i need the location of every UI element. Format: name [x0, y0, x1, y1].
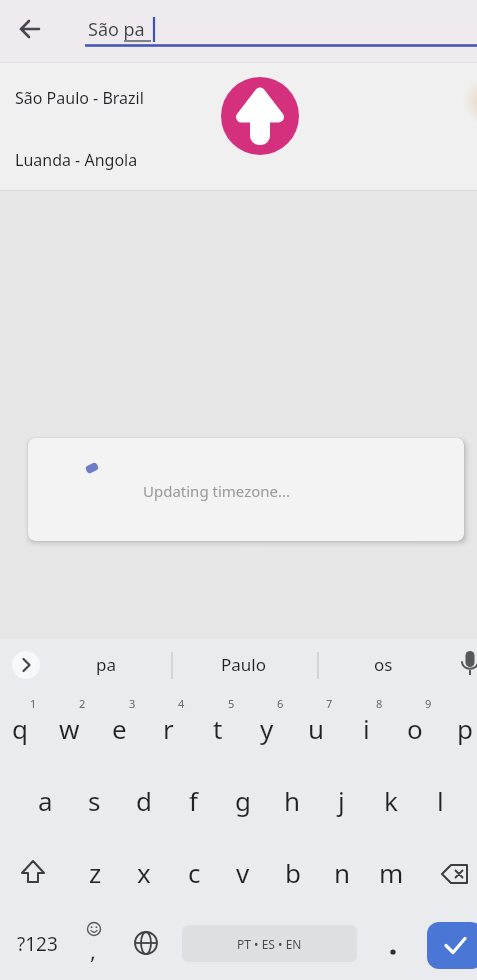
button[interactable]: Paulo — [188, 639, 298, 690]
staticText: 9 — [425, 696, 432, 711]
staticText: l — [437, 783, 444, 818]
button[interactable]: j — [317, 767, 365, 833]
staticText: x — [137, 855, 151, 890]
button[interactable]: u — [292, 695, 340, 761]
button[interactable] — [12, 651, 40, 679]
button[interactable]: k — [367, 767, 415, 833]
staticText: d — [136, 783, 152, 818]
button[interactable]: p — [441, 695, 477, 761]
button[interactable]: os — [328, 639, 438, 690]
staticText: q — [12, 711, 28, 746]
staticText: y — [260, 711, 274, 746]
staticText: pa — [96, 653, 116, 676]
button[interactable]: b — [269, 839, 317, 905]
staticText: w — [59, 711, 80, 746]
button[interactable]: a — [21, 767, 69, 833]
staticText: c — [188, 855, 201, 890]
button[interactable]: w — [45, 695, 93, 761]
staticText: i — [363, 711, 370, 746]
staticText: 2 — [79, 696, 86, 711]
staticText: p — [457, 711, 473, 746]
staticText: o — [407, 711, 423, 746]
staticText: 8 — [376, 696, 383, 711]
button[interactable]: São Paulo - Brazil — [0, 62, 477, 129]
staticText: h — [284, 783, 301, 818]
button[interactable]: i — [342, 695, 390, 761]
staticText: g — [235, 783, 251, 818]
button[interactable]: r — [144, 695, 192, 761]
staticText: t — [213, 711, 223, 746]
staticText: 3 — [129, 696, 136, 711]
staticText: Updating timezone... — [143, 481, 291, 501]
staticText: São pa — [88, 17, 145, 42]
button[interactable]: o — [391, 695, 439, 761]
staticText: f — [189, 783, 198, 818]
staticText: b — [285, 855, 301, 890]
button[interactable]: Luanda - Angola — [0, 129, 477, 191]
button[interactable] — [131, 928, 161, 958]
staticText: e — [112, 711, 127, 746]
button[interactable]: d — [120, 767, 168, 833]
staticText: 4 — [178, 696, 185, 711]
staticText: 5 — [228, 696, 235, 711]
staticText: ?123 — [17, 931, 58, 957]
button[interactable] — [16, 15, 44, 43]
staticText: u — [308, 711, 325, 746]
button[interactable]: ?123 — [10, 907, 64, 980]
staticText: z — [89, 855, 102, 890]
button[interactable]: g — [219, 767, 267, 833]
staticText: r — [163, 711, 174, 746]
staticText: Luanda - Angola — [15, 149, 138, 171]
button[interactable]: m — [367, 839, 415, 905]
button[interactable]: , — [74, 907, 114, 980]
button[interactable]: x — [120, 839, 168, 905]
button[interactable] — [437, 856, 473, 892]
button[interactable]: z — [71, 839, 119, 905]
staticText: 1 — [30, 696, 37, 711]
button[interactable]: e — [95, 695, 143, 761]
button[interactable]: h — [268, 767, 316, 833]
staticText: PT • ES • EN — [237, 936, 302, 952]
staticText: , — [90, 935, 96, 965]
button[interactable] — [373, 907, 413, 980]
button[interactable]: f — [169, 767, 217, 833]
button[interactable]: q — [0, 695, 44, 761]
button[interactable]: v — [219, 839, 267, 905]
staticText: os — [374, 653, 393, 676]
button[interactable]: l — [416, 767, 464, 833]
staticText: j — [338, 783, 345, 818]
button[interactable]: n — [318, 839, 366, 905]
staticText: n — [334, 855, 351, 890]
staticText: k — [384, 783, 398, 818]
button[interactable] — [221, 77, 299, 155]
button[interactable]: PT • ES • EN — [182, 925, 357, 962]
button[interactable]: t — [194, 695, 242, 761]
button[interactable]: s — [70, 767, 118, 833]
button[interactable] — [17, 856, 49, 888]
button[interactable]: y — [243, 695, 291, 761]
button[interactable] — [427, 922, 477, 969]
button[interactable]: pa — [51, 639, 161, 690]
staticText: s — [88, 783, 101, 818]
button[interactable]: c — [170, 839, 218, 905]
staticText: m — [379, 855, 404, 890]
staticText: 7 — [326, 696, 333, 711]
staticText: a — [38, 783, 53, 818]
staticText: São Paulo - Brazil — [15, 87, 144, 109]
staticText: 6 — [277, 696, 284, 711]
staticText: v — [236, 855, 250, 890]
staticText: Paulo — [221, 653, 266, 676]
